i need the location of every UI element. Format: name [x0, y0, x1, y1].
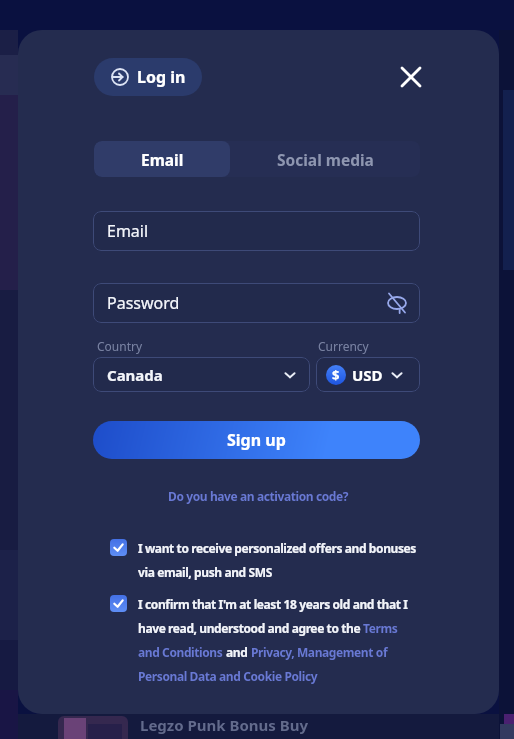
button[interactable]: Email	[93, 211, 420, 251]
button[interactable]: Sign up	[93, 421, 420, 459]
staticText: Legzo Punk Bonus Buy	[140, 715, 309, 735]
button[interactable]: Log in	[94, 58, 202, 96]
staticText: Do you have an activation code?	[168, 488, 349, 504]
staticText: Log in	[137, 66, 186, 88]
button[interactable]: Terms	[363, 620, 398, 636]
staticText: and	[226, 644, 251, 660]
staticText: via email, push and SMS	[138, 564, 272, 580]
staticText: I confirm that I'm at least 18 years old…	[138, 596, 408, 612]
button[interactable]: $	[316, 357, 420, 392]
button[interactable]: Do you have an activation code?	[18, 488, 499, 504]
button[interactable]	[110, 539, 127, 556]
staticText: I want to receive personalized offers an…	[138, 540, 416, 556]
staticText: Country	[97, 338, 143, 354]
staticText: Currency	[318, 338, 369, 354]
staticText: Personal Data and Cookie Policy	[138, 668, 318, 684]
staticText: Password	[107, 292, 180, 314]
button[interactable]: Email	[94, 141, 230, 177]
button[interactable]: Canada	[93, 357, 310, 392]
button[interactable]	[399, 65, 423, 89]
staticText: have read, understood and agree to the	[138, 620, 363, 636]
staticText: USD	[352, 365, 383, 385]
staticText: Social media	[277, 149, 374, 170]
button[interactable]: Password	[93, 283, 420, 323]
staticText: Email	[141, 149, 184, 170]
staticText: Canada	[107, 365, 163, 385]
staticText: Email	[107, 220, 149, 242]
button[interactable]: Privacy, Management of	[251, 644, 388, 660]
staticText: $	[332, 366, 340, 384]
staticText: and Conditions	[138, 644, 226, 660]
staticText: Sign up	[227, 429, 286, 451]
button[interactable]: Social media	[230, 141, 420, 177]
button[interactable]	[110, 595, 127, 612]
